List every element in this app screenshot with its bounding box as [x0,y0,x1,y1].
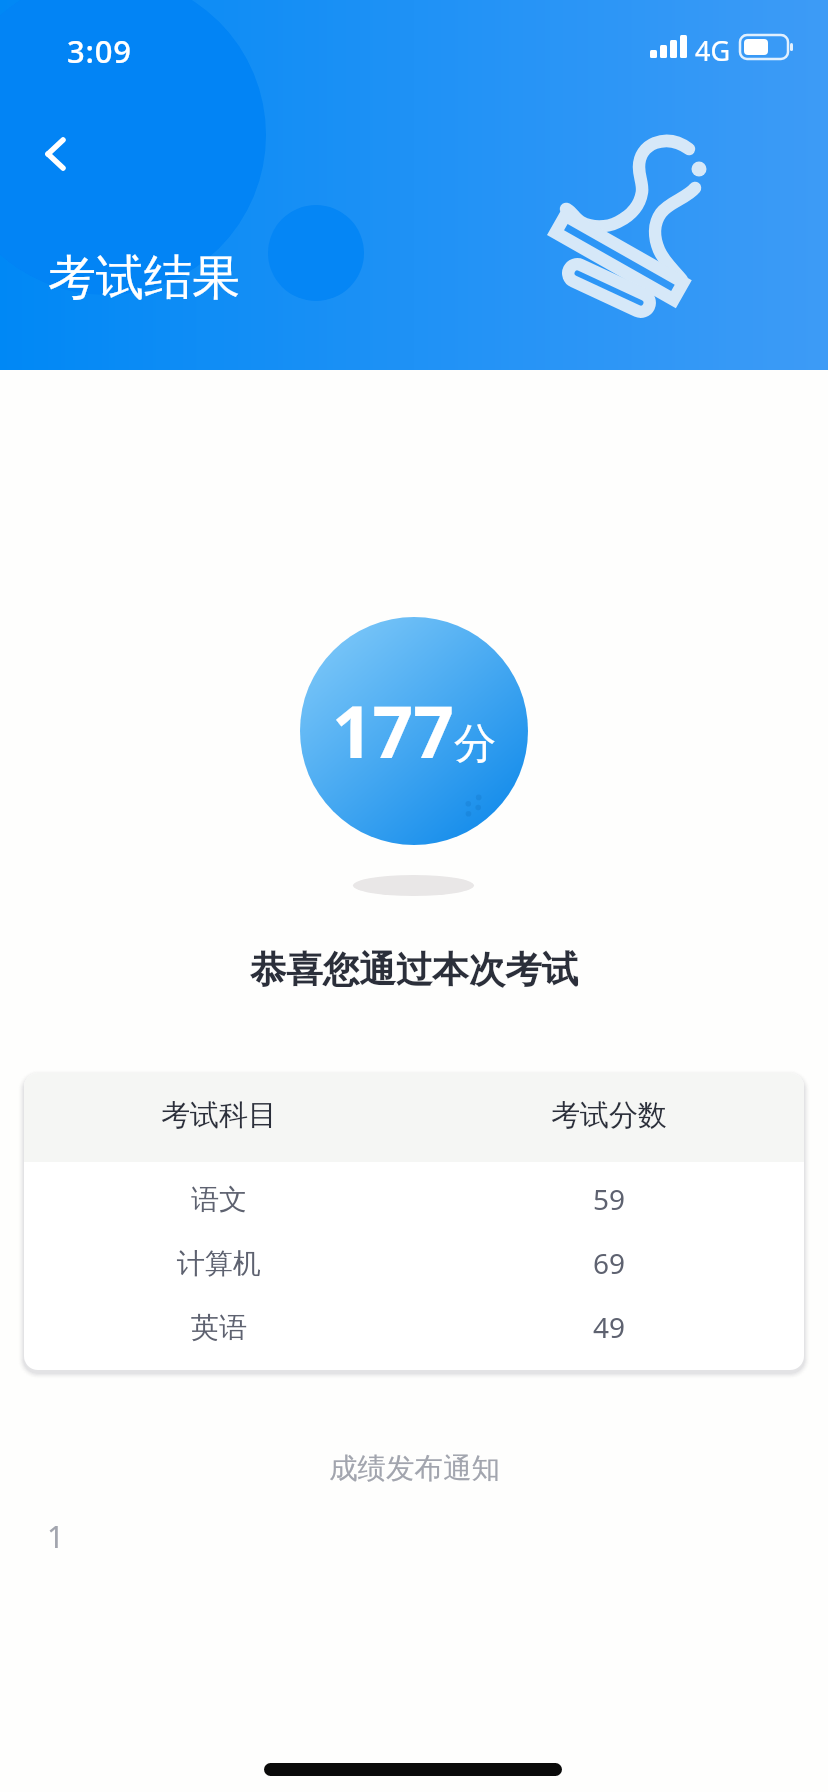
staticText: 分 [454,718,496,771]
staticText: 3:09 [67,30,132,72]
staticText: 计算机 [24,1246,414,1281]
button[interactable]: 英语 [24,1295,804,1359]
button[interactable]: 成绩发布通知 [0,1442,828,1494]
staticText: 考试分数 [414,1097,804,1134]
staticText: 69 [414,1244,804,1282]
staticText: 成绩发布通知 [329,1451,500,1487]
staticText: 177 [332,682,454,779]
button[interactable]: Back [22,128,78,184]
staticText: 考试科目 [24,1097,414,1134]
staticText: 恭喜您通过本次考试 [0,947,828,993]
staticText: 49 [414,1308,804,1346]
button[interactable]: 计算机 [24,1231,804,1295]
button[interactable]: 1 [24,1506,804,1558]
button[interactable]: 语文 [24,1167,804,1231]
staticText: 语文 [24,1182,414,1217]
staticText: 1 [47,1516,65,1557]
staticText: 英语 [24,1310,414,1345]
staticText: 4G [695,32,731,62]
staticText: 59 [414,1180,804,1218]
staticText: 考试结果 [48,248,240,308]
